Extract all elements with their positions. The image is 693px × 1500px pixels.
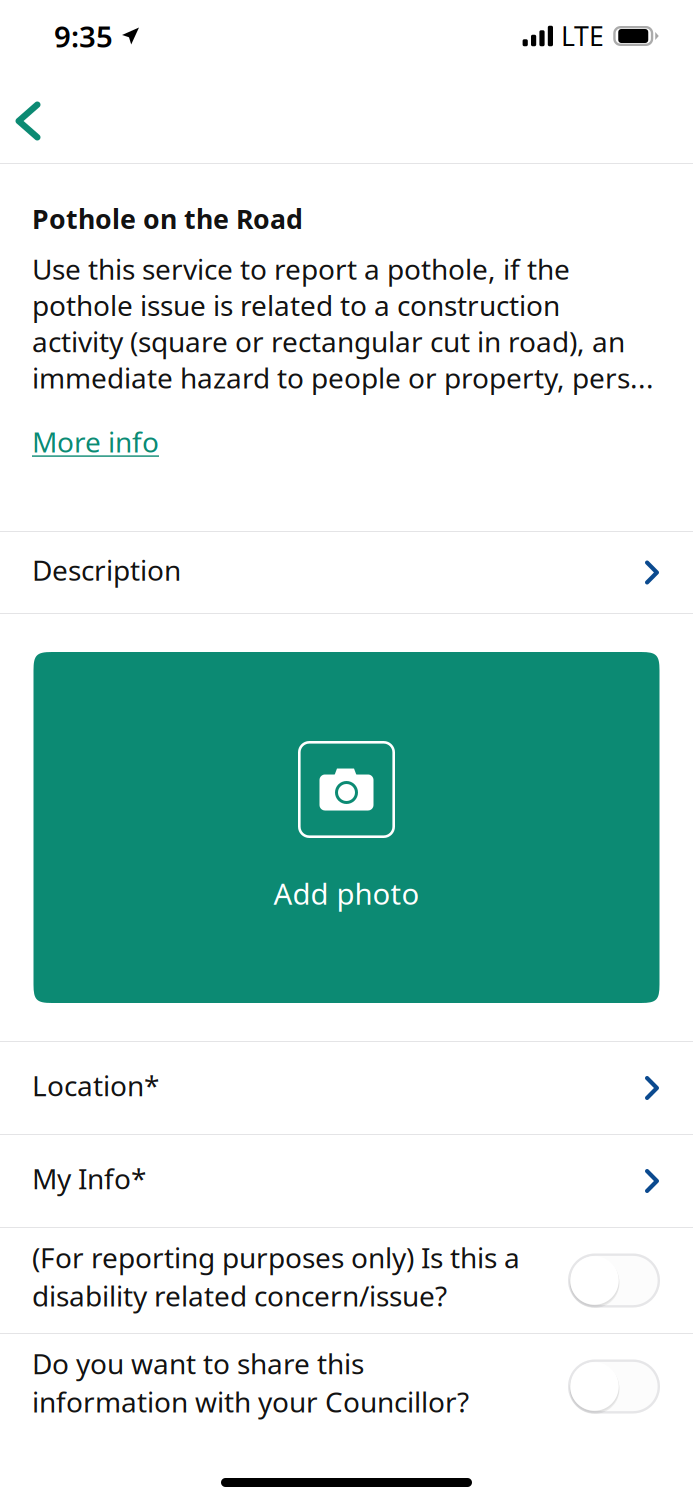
staticText: More info	[32, 423, 159, 460]
staticText: 9:35	[54, 16, 113, 55]
staticText: disability related concern/issue?	[32, 1277, 447, 1314]
staticText: My Info*	[32, 1160, 146, 1197]
staticText: Description	[32, 551, 181, 589]
staticText: Use this service to report a pothole, if…	[32, 250, 570, 288]
button[interactable]: Back	[0, 90, 59, 152]
staticText: information with your Councillor?	[32, 1383, 469, 1420]
button[interactable]: My Info*	[0, 1135, 693, 1227]
staticText: activity (square or rectangular cut in r…	[32, 323, 625, 360]
staticText: (For reporting purposes only) Is this a	[32, 1239, 520, 1276]
staticText: pothole issue is related to a constructi…	[32, 287, 560, 324]
staticText: Do you want to share this	[32, 1345, 364, 1382]
button[interactable]: Description	[0, 532, 693, 613]
button[interactable]: Location*	[0, 1042, 693, 1134]
staticText: Pothole on the Road	[32, 201, 303, 236]
button[interactable]: Add photo	[33, 652, 659, 1003]
staticText: immediate hazard to people or property, …	[32, 359, 654, 396]
button[interactable]: More info	[32, 396, 159, 460]
staticText: LTE	[561, 18, 604, 54]
button[interactable]: (For reporting purposes only) Is this a	[0, 1228, 693, 1333]
button[interactable]: Do you want to share this	[0, 1334, 693, 1439]
staticText: Add photo	[273, 874, 419, 913]
staticText: Location*	[32, 1067, 159, 1104]
